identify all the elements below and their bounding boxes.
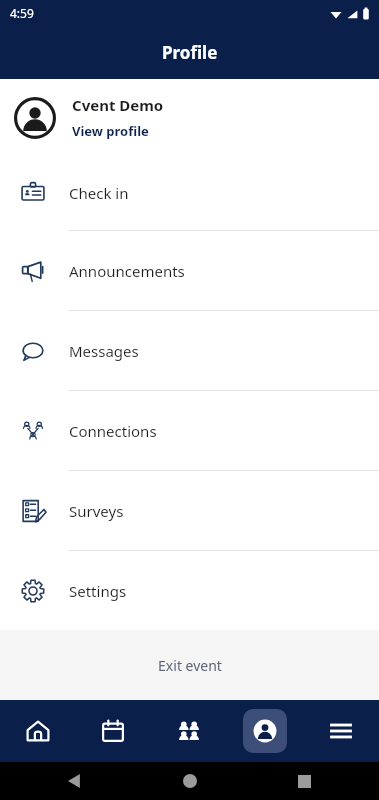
button[interactable]: Profile xyxy=(227,700,303,762)
button[interactable]: Announcements xyxy=(0,231,379,310)
button[interactable]: More xyxy=(303,700,379,762)
button[interactable]: Attendees xyxy=(151,700,227,762)
button[interactable]: Settings xyxy=(0,551,379,630)
staticText: Settings xyxy=(69,581,127,601)
staticText: Cvent Demo xyxy=(72,95,164,115)
staticText: Check in xyxy=(69,183,129,203)
button[interactable]: Connections xyxy=(0,391,379,470)
staticText: Messages xyxy=(69,341,139,361)
staticText: 4:59 xyxy=(10,5,34,21)
button[interactable]: Exit event xyxy=(0,630,379,700)
button[interactable]: Check in xyxy=(0,156,379,230)
staticText: View profile xyxy=(72,122,149,140)
button[interactable]: Cvent Demo xyxy=(0,79,379,156)
button[interactable]: Home xyxy=(0,700,75,762)
staticText: Exit event xyxy=(158,656,222,675)
button[interactable]: Surveys xyxy=(0,471,379,550)
button[interactable]: Schedule xyxy=(75,700,151,762)
staticText: Profile xyxy=(162,41,218,64)
staticText: Surveys xyxy=(69,501,124,521)
button[interactable]: Messages xyxy=(0,311,379,390)
staticText: Connections xyxy=(69,421,157,441)
staticText: Announcements xyxy=(69,261,185,281)
